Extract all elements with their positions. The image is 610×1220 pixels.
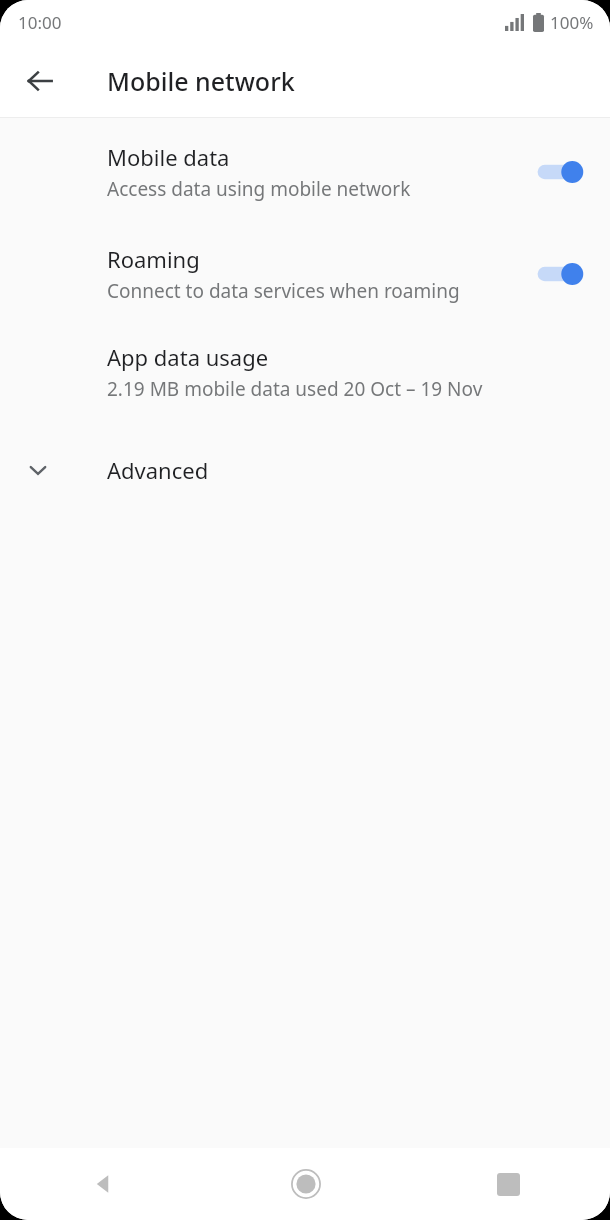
staticText: 10:00	[18, 11, 62, 34]
button[interactable]: Back	[12, 53, 68, 109]
button[interactable]: Recent apps	[407, 1148, 610, 1220]
button[interactable]: Home	[204, 1148, 407, 1220]
staticText: Mobile network	[107, 64, 295, 98]
button[interactable]: Back	[0, 1148, 204, 1220]
button[interactable]: Mobile data	[0, 142, 610, 202]
staticText: Roaming	[107, 244, 200, 274]
staticText: Advanced	[107, 455, 209, 485]
button[interactable]: App data usage	[0, 342, 610, 402]
button[interactable]: Toggle	[532, 152, 588, 192]
button[interactable]: Advanced	[0, 444, 610, 496]
button[interactable]: Toggle	[532, 254, 588, 294]
staticText: App data usage	[107, 342, 269, 372]
staticText: Access data using mobile network	[107, 176, 411, 202]
staticText: Mobile data	[107, 142, 230, 172]
staticText: Connect to data services when roaming	[107, 278, 460, 304]
button[interactable]: Roaming	[0, 244, 610, 304]
staticText: 100%	[550, 11, 594, 34]
staticText: 2.19 MB mobile data used 20 Oct – 19 Nov	[107, 376, 483, 402]
